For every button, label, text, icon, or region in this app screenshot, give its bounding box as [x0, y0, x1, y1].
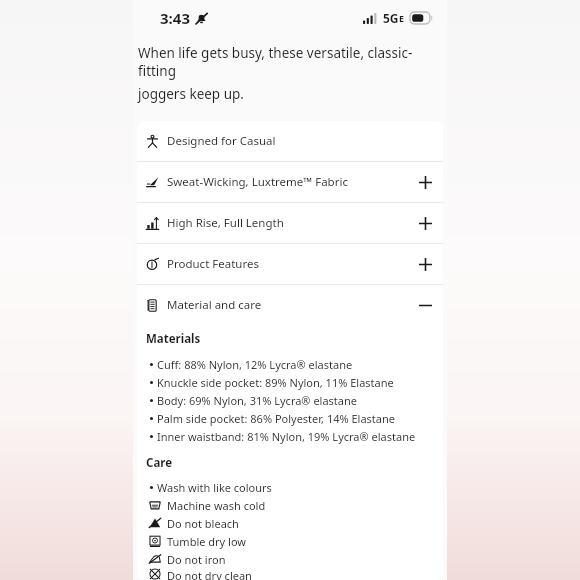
staticText: Inner waistband: 81% Nylon, 19% Lycra® e… [157, 429, 416, 444]
staticText: Do not dry clean [167, 568, 252, 580]
button[interactable]: Designed for Casual [137, 121, 443, 161]
staticText: Body: 69% Nylon, 31% Lycra® elastane [157, 393, 358, 408]
button[interactable]: Sweat-Wicking, Luxtreme™ Fabric [137, 162, 443, 202]
staticText: Tumble dry low [167, 534, 247, 549]
button[interactable]: Product Features [137, 244, 443, 284]
staticText: Machine wash cold [167, 498, 266, 513]
staticText: 5G [383, 10, 399, 26]
button[interactable]: High Rise, Full Length [137, 203, 443, 243]
button[interactable]: Material and care [137, 285, 443, 325]
staticText: Materials [146, 331, 201, 347]
staticText: Wash with like colours [157, 480, 272, 495]
staticText: Do not iron [167, 552, 226, 567]
staticText: Knuckle side pocket: 89% Nylon, 11% Elas… [157, 375, 394, 390]
staticText: Care [146, 455, 173, 471]
staticText: Sweat-Wicking, Luxtreme™ Fabric [167, 174, 348, 190]
staticText: Palm side pocket: 86% Polyester, 14% Ela… [157, 411, 396, 426]
staticText: joggers keep up. [138, 85, 244, 103]
staticText: Do not bleach [167, 516, 239, 531]
staticText: Designed for Casual [167, 133, 276, 149]
staticText: Cuff: 88% Nylon, 12% Lycra® elastane [157, 357, 353, 372]
staticText: E [399, 12, 405, 24]
staticText: When life gets busy, these versatile, cl… [138, 44, 442, 80]
staticText: High Rise, Full Length [167, 215, 284, 231]
staticText: Product Features [167, 256, 259, 272]
staticText: Material and care [167, 297, 262, 313]
staticText: 3:43 [160, 8, 190, 28]
